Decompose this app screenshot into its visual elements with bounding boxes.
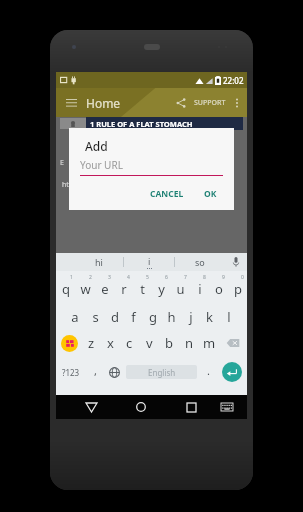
button[interactable]: Hide keyboard [215,395,239,419]
staticText: x [107,334,114,352]
button[interactable]: English [126,365,197,379]
button[interactable]: h [162,301,181,329]
staticText: h [167,308,176,326]
button[interactable]: More options [229,95,245,111]
button[interactable]: c [120,329,139,357]
staticText: m [203,334,216,352]
staticText: hi [95,256,103,268]
staticText: z [88,334,95,352]
staticText: t [140,280,145,298]
button[interactable]: Shift [56,329,82,357]
button[interactable]: Your URL [80,158,223,176]
button[interactable]: b [159,329,179,357]
staticText: CANCEL [150,188,184,200]
staticText: 6 [165,274,168,281]
button[interactable]: 6 [152,273,171,301]
button[interactable]: f [124,301,143,329]
button[interactable]: s [85,301,105,329]
button[interactable]: k [200,301,219,329]
staticText: i [148,255,151,267]
button[interactable]: n [179,329,199,357]
staticText: i [198,280,202,298]
staticText: u [176,280,185,298]
staticText: v [146,334,153,352]
staticText: n [185,334,194,352]
button[interactable]: v [139,329,159,357]
button[interactable]: m [199,329,219,357]
staticText: 1 [70,274,73,281]
staticText: s [92,308,99,326]
staticText: 8 [203,274,206,281]
staticText: E [60,158,64,168]
button[interactable]: Voice input [225,253,247,271]
button[interactable]: . [199,357,217,387]
button[interactable]: l [219,301,238,329]
button[interactable]: 1 RULE OF A FLAT STOMACH [60,117,243,130]
button[interactable]: Back [79,395,103,419]
button[interactable]: 7 [171,273,190,301]
button[interactable]: 3 [95,273,114,301]
staticText: 22:02 [223,75,244,86]
button[interactable]: Backspace [219,329,247,357]
staticText: 3 [108,274,111,281]
staticText: . [207,363,210,378]
button[interactable]: g [143,301,162,329]
staticText: 7 [184,274,187,281]
button[interactable]: d [105,301,124,329]
button[interactable]: SUPPORT [191,98,229,108]
staticText: e [101,280,109,298]
staticText: f [131,308,136,326]
button[interactable]: hi [74,253,123,271]
staticText: Add [85,138,108,154]
staticText: http://www.bbc.co.uk/news/ [62,180,155,190]
staticText: j [189,308,193,326]
button[interactable]: z [82,329,101,357]
staticText: 4 [127,274,130,281]
staticText: a [71,308,79,326]
staticText: l [227,308,231,326]
staticText: 0 [241,274,244,281]
staticText: g [149,308,157,326]
staticText: ?123 [62,367,80,378]
button[interactable]: OK [197,185,224,203]
button[interactable]: x [101,329,120,357]
staticText: d [111,308,119,326]
staticText: English [148,367,176,378]
staticText: y [158,280,165,298]
button[interactable]: Recent apps [179,395,203,419]
button[interactable]: Enter [217,357,247,387]
staticText: Your URL [80,158,123,172]
staticText: 9 [222,274,225,281]
staticText: OK [204,188,217,200]
staticText: so [195,256,205,268]
staticText: Home [86,95,121,111]
button[interactable]: 0 [228,273,247,301]
button[interactable]: j [181,301,200,329]
button[interactable]: 9 [209,273,228,301]
button[interactable]: 8 [190,273,209,301]
staticText: r [121,280,127,298]
button[interactable]: ?123 [56,357,86,387]
staticText: o [215,280,223,298]
button[interactable]: CANCEL [143,185,191,203]
staticText: , [94,363,97,378]
button[interactable]: Home [129,395,153,419]
staticText: b [165,334,173,352]
staticText: 1 RULE OF A FLAT STOMACH [90,119,193,129]
button[interactable]: a [65,301,85,329]
staticText: 2 [89,274,92,281]
staticText: p [234,280,242,298]
staticText: k [206,308,213,326]
button[interactable]: Share [171,93,191,113]
button[interactable]: 2 [76,273,95,301]
button[interactable]: so [175,253,225,271]
staticText: q [62,280,70,298]
button[interactable]: , [86,357,104,387]
button[interactable]: 4 [114,273,133,301]
button[interactable]: 1 [56,273,76,301]
button[interactable]: 5 [133,273,152,301]
button[interactable]: i [124,253,174,271]
button[interactable]: Open navigation menu [61,93,81,113]
staticText: 5 [146,274,149,281]
button[interactable]: Change keyboard language [104,357,124,387]
